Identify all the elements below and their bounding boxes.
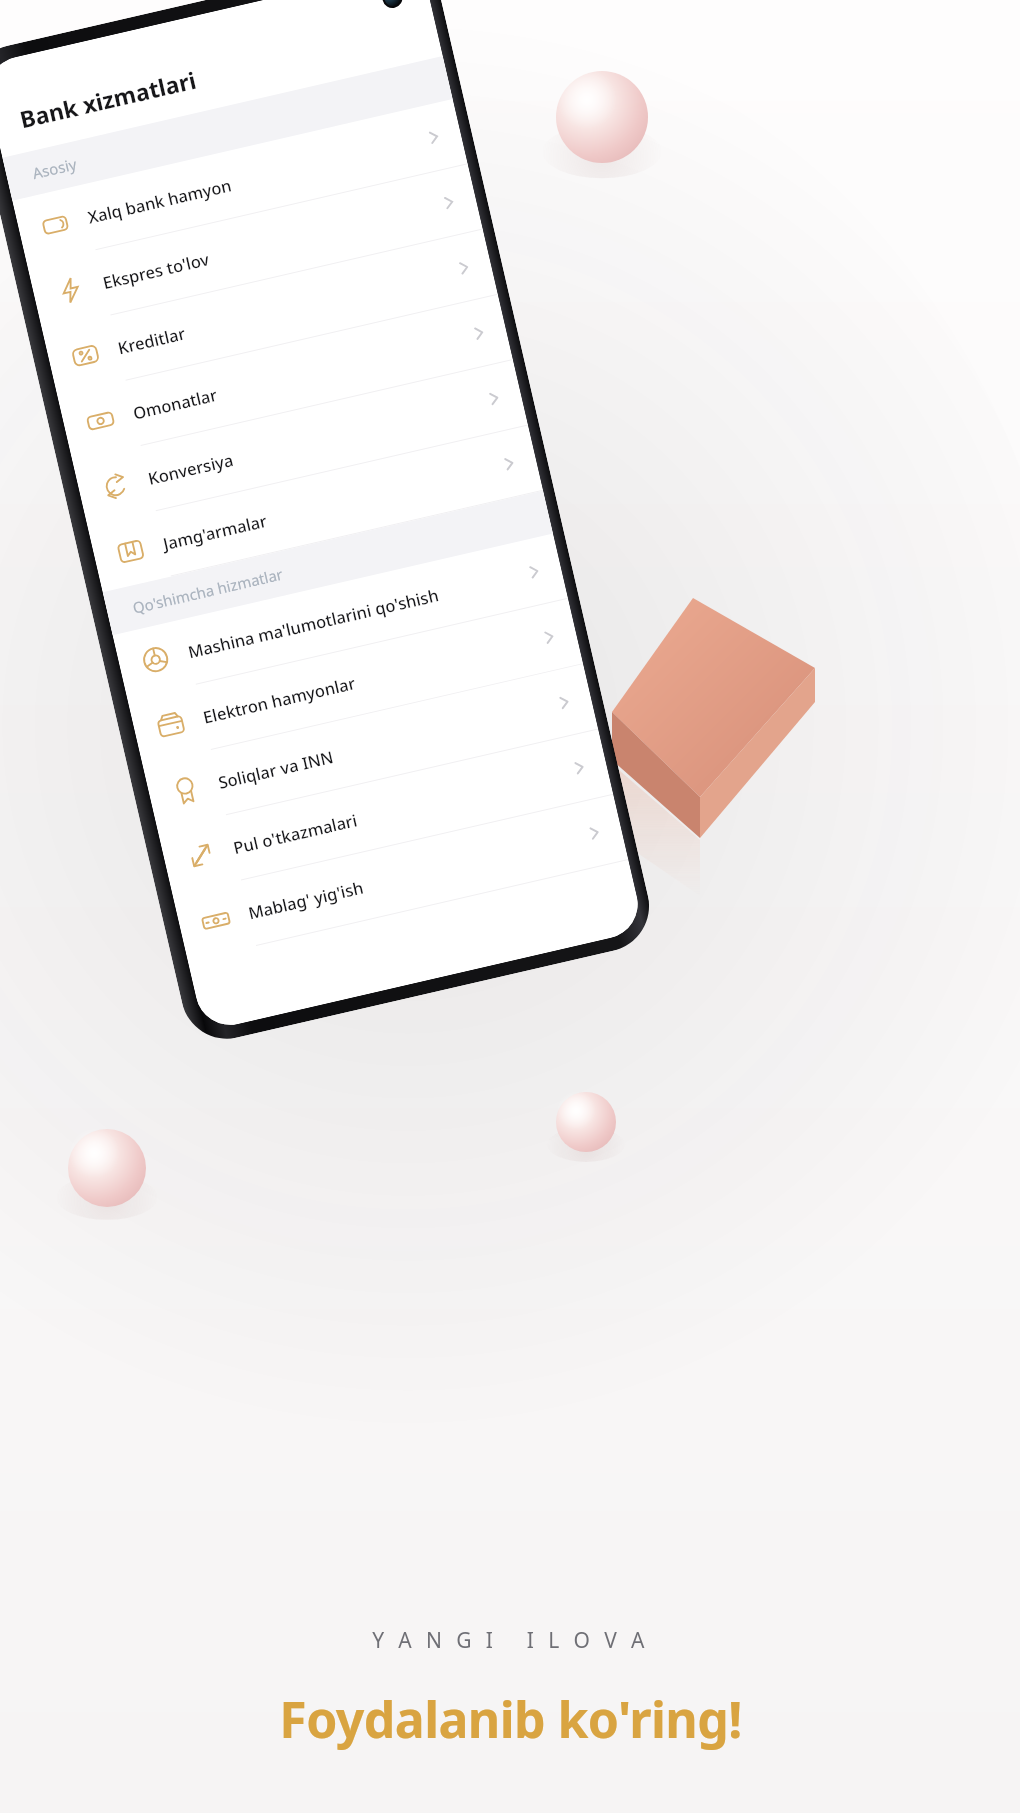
staticText: Asosiy	[30, 153, 79, 183]
staticText: Soliqlar va INN	[216, 693, 560, 793]
button[interactable]: Jamg'armalar	[88, 425, 543, 592]
button[interactable]: Soliqlar va INN	[143, 664, 598, 831]
staticText: Qo'shimcha hizmatlar	[131, 563, 285, 618]
button[interactable]: Konversiya	[73, 360, 528, 527]
staticText: Y A N G I I L O V A	[372, 1626, 649, 1655]
button[interactable]: Ekspres to'lov	[27, 164, 483, 331]
staticText: Pul o'tkazmalari	[231, 758, 575, 858]
staticText: Mablag' yig'ish	[246, 824, 590, 923]
button[interactable]: Mashina ma'lumotlarini qo'shish	[113, 533, 568, 700]
staticText: Foydalanib ko'ring!	[279, 1685, 742, 1753]
other: Front camera	[380, 0, 404, 10]
button[interactable]: Omonatlar	[57, 295, 513, 462]
button[interactable]: Elektron hamyonlar	[128, 599, 583, 766]
staticText: Bank xizmatlari	[17, 64, 199, 134]
button[interactable]: Pul o'tkazmalari	[158, 729, 613, 896]
button[interactable]: Mablag' yig'ish	[173, 795, 628, 962]
staticText: Kreditlar	[116, 259, 460, 358]
staticText: Ekspres to'lov	[100, 193, 444, 293]
button[interactable]: Kreditlar	[42, 229, 498, 396]
button[interactable]: Xalq bank hamyon	[12, 99, 468, 266]
staticText: Elektron hamyonlar	[201, 628, 545, 728]
staticText: Jamg'armalar	[161, 454, 505, 554]
staticText: Mashina ma'lumotlarini qo'shish	[186, 563, 530, 662]
staticText: Konversiya	[146, 389, 490, 489]
staticText: Omonatlar	[131, 324, 475, 424]
staticText: Xalq bank hamyon	[85, 128, 429, 228]
